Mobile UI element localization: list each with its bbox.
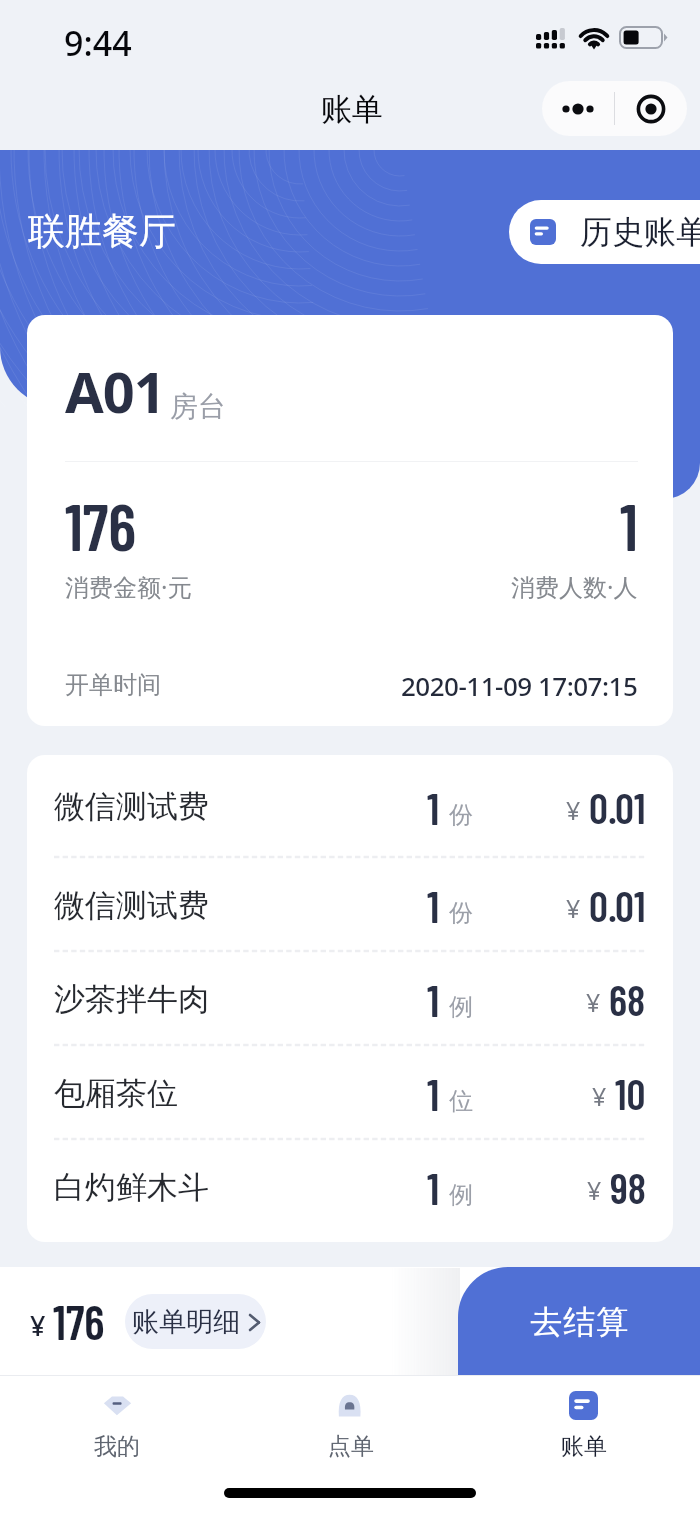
staticText: 1	[620, 486, 638, 564]
staticText: ¥	[586, 985, 601, 1019]
staticText: 9:44	[64, 20, 132, 66]
staticText: 98	[610, 1162, 646, 1212]
staticText: 微信测试费	[54, 787, 209, 826]
button[interactable]: 点单	[234, 1375, 467, 1463]
staticText: 0.01	[589, 782, 646, 832]
staticText: 1	[427, 780, 440, 834]
button[interactable]: 账单明细	[125, 1294, 266, 1349]
staticText: 沙茶拌牛肉	[54, 980, 209, 1019]
staticText: 10	[615, 1068, 646, 1118]
staticText: 账单	[321, 90, 383, 129]
button[interactable]: 微信测试费	[54, 858, 646, 952]
button[interactable]: 去结算	[458, 1267, 700, 1376]
staticText: 68	[609, 974, 646, 1024]
staticText: ¥	[587, 1173, 602, 1207]
staticText: 1	[427, 972, 440, 1026]
staticText: 例	[449, 1180, 473, 1210]
staticText: 1	[427, 1160, 440, 1214]
staticText: 0.01	[589, 880, 646, 930]
staticText: 2020-11-09 17:07:15	[401, 668, 638, 703]
staticText: ¥	[30, 1307, 46, 1344]
button[interactable]: 包厢茶位	[54, 1046, 646, 1140]
button[interactable]: More options	[542, 81, 614, 136]
staticText: 例	[449, 992, 473, 1022]
staticText: 账单	[561, 1432, 607, 1461]
staticText: 份	[449, 898, 473, 928]
staticText: ¥	[592, 1079, 607, 1113]
staticText: 1	[427, 1066, 440, 1120]
staticText: 历史账单	[580, 212, 700, 252]
staticText: A01	[65, 353, 165, 429]
staticText: 份	[449, 800, 473, 830]
button[interactable]: 我的	[0, 1375, 234, 1463]
button[interactable]: 微信测试费	[54, 755, 646, 858]
staticText: 我的	[94, 1432, 140, 1461]
staticText: 点单	[328, 1432, 374, 1461]
staticText: 176	[53, 1293, 105, 1349]
staticText: 联胜餐厅	[28, 208, 176, 255]
button[interactable]: 沙茶拌牛肉	[54, 952, 646, 1046]
button[interactable]: 历史账单	[509, 200, 700, 264]
staticText: 房台	[170, 389, 226, 424]
staticText: 微信测试费	[54, 886, 209, 925]
staticText: 位	[449, 1086, 473, 1116]
staticText: 消费人数·人	[511, 570, 638, 603]
staticText: 开单时间	[65, 670, 161, 700]
button[interactable]: Close mini program	[615, 81, 687, 136]
staticText: 176	[65, 486, 137, 564]
staticText: 1	[427, 878, 440, 932]
staticText: ¥	[566, 793, 581, 827]
staticText: 去结算	[530, 1302, 629, 1342]
staticText: ¥	[566, 891, 581, 925]
staticText: 账单明细	[132, 1305, 240, 1339]
button[interactable]: 账单	[467, 1375, 700, 1463]
button[interactable]: 白灼鲜木斗	[54, 1140, 646, 1234]
staticText: 白灼鲜木斗	[54, 1168, 209, 1207]
staticText: 包厢茶位	[54, 1074, 178, 1113]
staticText: 消费金额·元	[65, 570, 192, 603]
